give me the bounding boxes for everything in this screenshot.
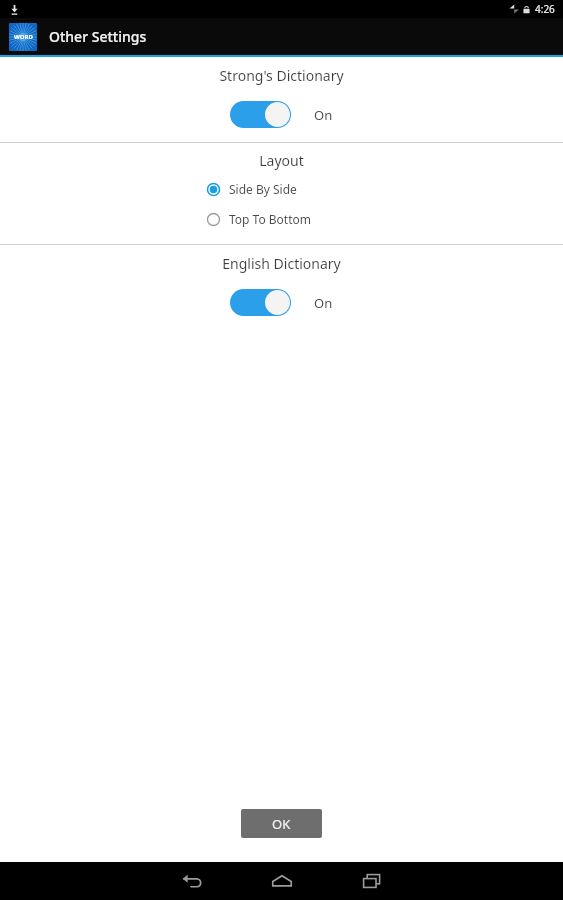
- button[interactable]: Home: [258, 862, 306, 900]
- staticText: 4:26: [535, 2, 555, 16]
- button[interactable]: Back: [168, 862, 216, 900]
- staticText: OK: [272, 815, 291, 833]
- staticText: WORD: [14, 33, 33, 41]
- staticText: Side By Side: [229, 181, 297, 197]
- button[interactable]: Recent apps: [348, 862, 396, 900]
- button[interactable]: On: [228, 287, 335, 318]
- button[interactable]: OK: [241, 809, 322, 838]
- button[interactable]: Top To Bottom: [207, 204, 357, 234]
- staticText: English Dictionary: [222, 254, 341, 273]
- staticText: Strong's Dictionary: [219, 66, 344, 85]
- staticText: On: [314, 106, 333, 124]
- button[interactable]: On: [228, 99, 335, 130]
- button[interactable]: Side By Side: [207, 174, 357, 204]
- button[interactable]: App icon: [9, 23, 37, 51]
- staticText: Other Settings: [49, 27, 147, 46]
- staticText: On: [314, 294, 333, 312]
- staticText: Layout: [259, 151, 304, 170]
- staticText: Top To Bottom: [229, 211, 312, 227]
